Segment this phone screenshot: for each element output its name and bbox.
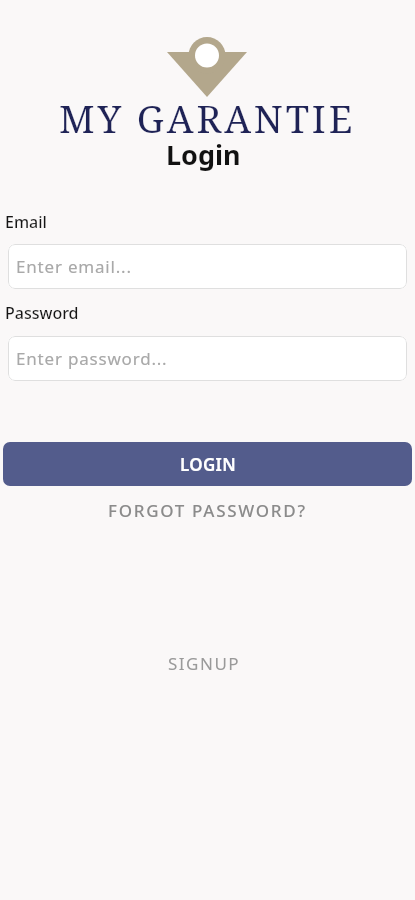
button[interactable]: Enter email... <box>8 244 407 289</box>
staticText: Enter password... <box>16 347 168 370</box>
staticText: Password <box>5 302 79 324</box>
button[interactable]: SIGNUP <box>168 652 241 675</box>
staticText: Login <box>166 136 241 173</box>
button[interactable]: FORGOT PASSWORD? <box>108 499 307 522</box>
staticText: MY GARANTIE <box>59 92 356 144</box>
staticText: Email <box>5 211 47 233</box>
button[interactable]: LOGIN <box>3 442 412 486</box>
staticText: LOGIN <box>180 453 236 476</box>
staticText: SIGNUP <box>168 652 241 675</box>
staticText: FORGOT PASSWORD? <box>108 499 307 522</box>
button[interactable]: Enter password... <box>8 336 407 381</box>
staticText: Enter email... <box>16 255 132 278</box>
